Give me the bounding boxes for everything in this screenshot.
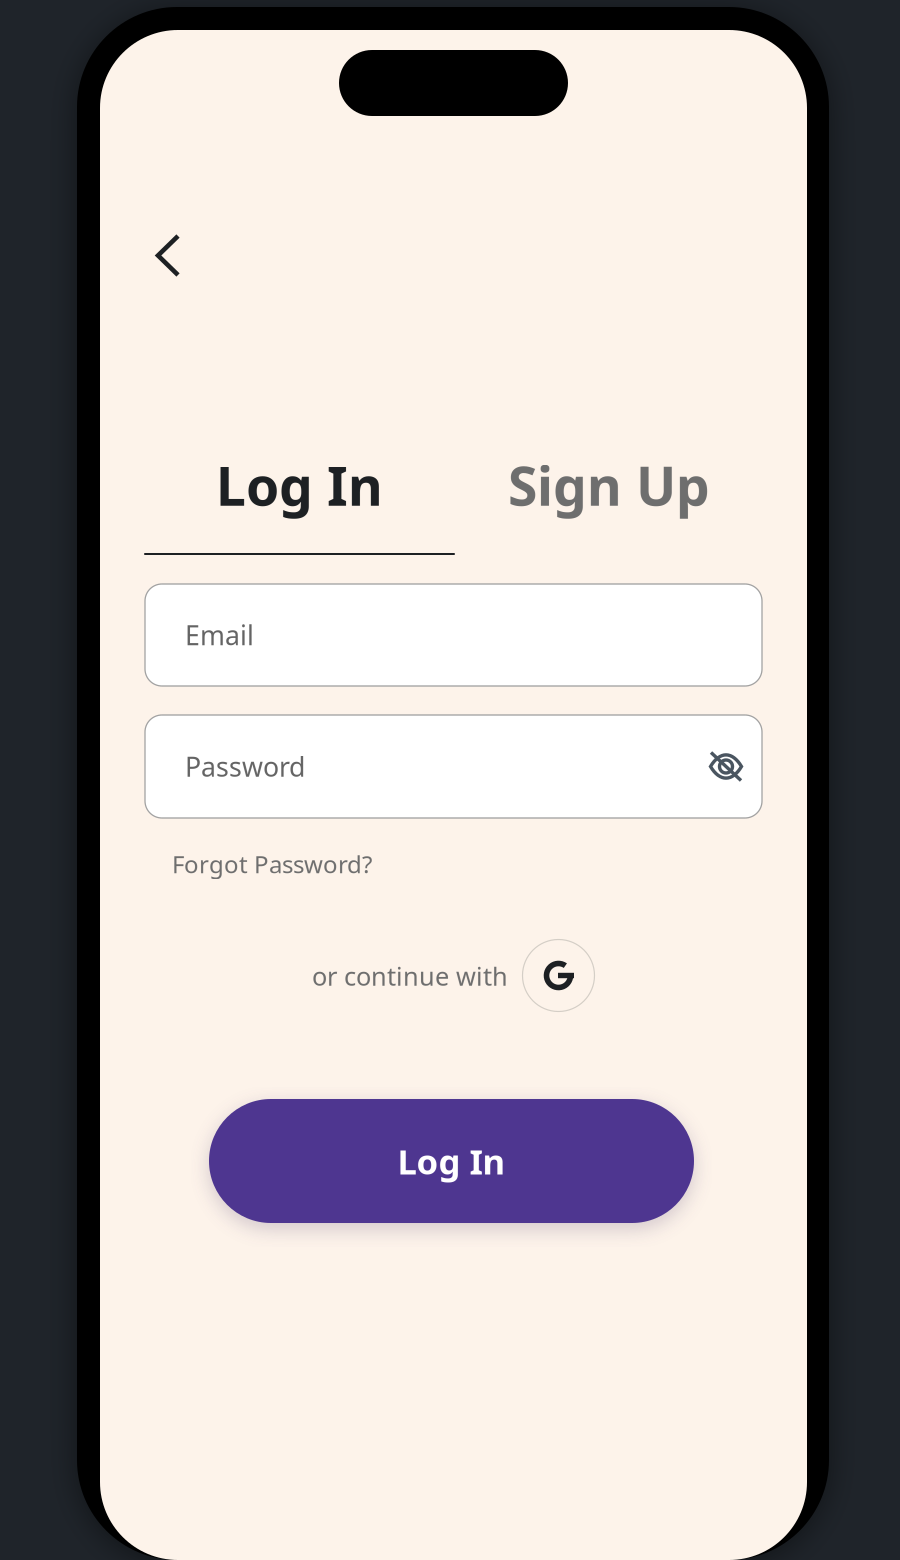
button[interactable]: Back bbox=[138, 216, 198, 295]
button[interactable]: Show password bbox=[697, 737, 755, 795]
button[interactable]: Log In bbox=[209, 1099, 694, 1223]
button[interactable]: Email bbox=[145, 584, 762, 686]
staticText: or continue with bbox=[312, 959, 508, 993]
button[interactable]: Password bbox=[145, 715, 762, 818]
button[interactable]: Continue with Google bbox=[522, 939, 595, 1012]
staticText: Log In bbox=[397, 1138, 505, 1184]
button[interactable]: Log In bbox=[144, 445, 455, 525]
staticText: Email bbox=[185, 617, 254, 653]
button[interactable]: Sign Up bbox=[464, 445, 754, 525]
staticText: Password bbox=[185, 749, 305, 784]
staticText: Sign Up bbox=[508, 450, 710, 520]
staticText: Log In bbox=[216, 450, 383, 520]
staticText: Forgot Password? bbox=[172, 848, 372, 880]
button[interactable]: Forgot Password? bbox=[172, 841, 372, 887]
